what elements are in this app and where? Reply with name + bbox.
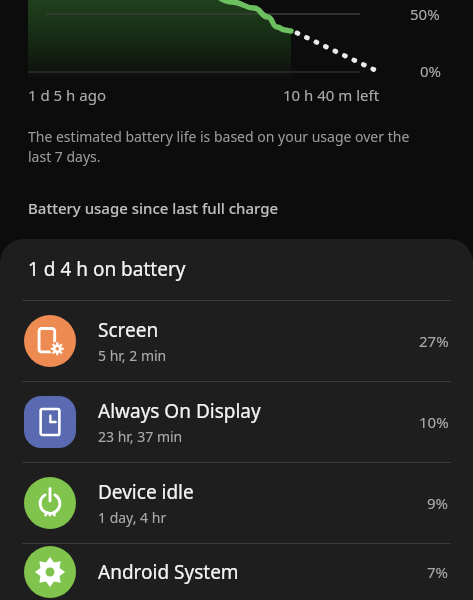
staticText: 50%	[410, 4, 440, 24]
staticText: Android System	[98, 559, 239, 585]
other: Android System	[24, 558, 76, 586]
staticText: 10%	[419, 412, 449, 432]
other: Always On Display	[24, 396, 76, 448]
staticText: 10 h 40 m left	[283, 85, 380, 105]
staticText: Battery usage since last full charge	[28, 198, 279, 218]
staticText: 5 hr, 2 min	[98, 346, 167, 365]
other: Screen	[24, 315, 76, 367]
staticText: 0%	[420, 61, 442, 81]
staticText: 7%	[427, 562, 449, 582]
button[interactable]: Device idle	[0, 463, 473, 543]
staticText: 9%	[427, 493, 449, 513]
staticText: 23 hr, 37 min	[98, 427, 183, 446]
staticText: The estimated battery life is based on y…	[28, 127, 431, 166]
staticText: 1 day, 4 hr	[98, 508, 167, 527]
other: Device idle	[24, 477, 76, 529]
button[interactable]: Always On Display	[0, 382, 473, 462]
staticText: 27%	[419, 331, 449, 351]
button[interactable]: Screen	[0, 301, 473, 381]
staticText: Always On Display	[98, 398, 261, 424]
button[interactable]: Android System	[0, 544, 473, 600]
staticText: Device idle	[98, 479, 194, 505]
staticText: Screen	[98, 317, 159, 343]
staticText: 1 d 4 h on battery	[28, 256, 186, 282]
staticText: 1 d 5 h ago	[28, 85, 106, 105]
